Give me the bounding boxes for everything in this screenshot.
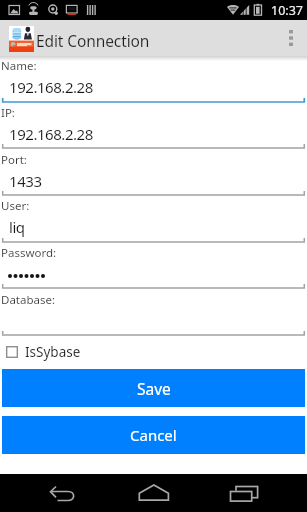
button[interactable]: IsSybase	[0, 341, 307, 362]
staticText: liq	[9, 217, 25, 237]
staticText: 192.168.2.28	[9, 77, 93, 97]
staticText: Save	[137, 378, 171, 399]
staticText: User:	[1, 198, 30, 214]
staticText: IsSybase	[25, 343, 81, 361]
button[interactable]: Home	[134, 474, 174, 512]
staticText: Cancel	[130, 425, 177, 445]
button[interactable]: Cancel	[2, 416, 305, 454]
staticText: 1433	[9, 171, 42, 191]
staticText: 192.168.2.28	[9, 124, 93, 144]
staticText: Port:	[1, 152, 27, 168]
staticText: Edit Connection	[36, 30, 150, 51]
button[interactable]: Save	[2, 369, 305, 407]
staticText: 10:37	[271, 2, 303, 19]
staticText: Password:	[1, 245, 57, 261]
staticText: Name:	[1, 58, 37, 74]
button[interactable]: Recent apps	[224, 474, 264, 512]
button[interactable]: More options	[275, 20, 307, 56]
staticText: Database:	[1, 292, 56, 308]
button[interactable]: Back	[44, 474, 84, 512]
staticText: IP:	[1, 105, 15, 121]
